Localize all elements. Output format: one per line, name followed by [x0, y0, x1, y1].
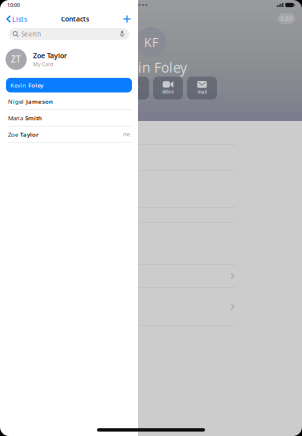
staticText: Contacts	[61, 14, 89, 24]
button[interactable]: Kevin Foley	[6, 78, 132, 92]
button[interactable]: call	[119, 76, 149, 99]
staticText: Kevin Foley	[10, 81, 43, 89]
button[interactable]: ZT	[0, 40, 138, 77]
staticText: me	[123, 131, 130, 138]
staticText: Edit	[280, 14, 292, 23]
button[interactable]: New contact	[123, 11, 138, 27]
staticText: mail	[197, 89, 206, 95]
button[interactable]: message	[85, 76, 115, 99]
staticText: video	[162, 89, 174, 95]
staticText: Nigel Jameson	[8, 97, 53, 105]
staticText: Zoe Taylor	[8, 130, 39, 138]
button[interactable]: mail	[187, 76, 217, 99]
button[interactable]: Lists	[0, 10, 27, 28]
staticText: message	[90, 89, 110, 96]
staticText: Zoe Taylor	[33, 51, 67, 60]
staticText: Kevin Foley	[115, 58, 187, 77]
staticText: Search	[21, 30, 41, 38]
button[interactable]: Maria Smith	[0, 110, 138, 126]
staticText: My Card	[33, 61, 53, 68]
button[interactable]: Edit	[278, 13, 295, 24]
staticText: Maria Smith	[8, 114, 42, 122]
button[interactable]: Zoe Taylor	[0, 126, 138, 142]
staticText: 10:00	[7, 1, 20, 9]
staticText: ZT	[11, 54, 21, 65]
button[interactable]: Nigel Jameson	[0, 93, 138, 109]
staticText: KF	[144, 34, 158, 51]
staticText: call	[130, 90, 137, 96]
staticText: Lists	[12, 14, 27, 24]
button[interactable]: video	[153, 76, 183, 99]
